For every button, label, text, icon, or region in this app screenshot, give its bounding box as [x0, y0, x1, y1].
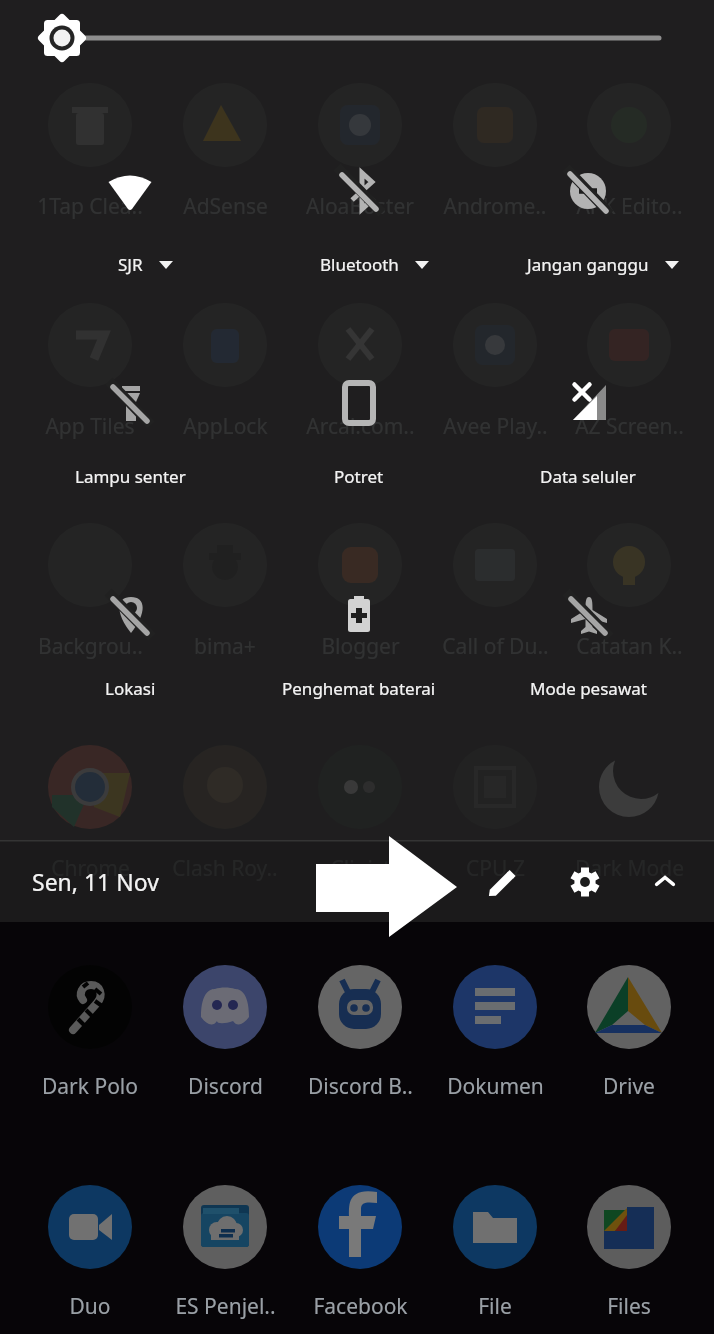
- staticText: Files: [607, 1292, 651, 1321]
- staticText: Cliqist: [330, 854, 391, 883]
- staticText: AloaBoster: [306, 192, 414, 221]
- button[interactable]: Lampu senter: [16, 337, 244, 506]
- button[interactable]: Clash Roy..: [145, 836, 305, 900]
- button[interactable]: Avee Play..: [415, 394, 575, 458]
- staticText: Lampu senter: [75, 465, 186, 488]
- staticText: Sen, 11 Nov: [32, 866, 159, 897]
- staticText: Potret: [334, 465, 384, 488]
- button[interactable]: APK Edito..: [549, 174, 709, 238]
- button[interactable]: Backgrou..: [10, 614, 170, 678]
- staticText: Dark Polo: [42, 1072, 138, 1101]
- button[interactable]: Dark Polo: [10, 1054, 170, 1118]
- button[interactable]: Collapse: [631, 848, 699, 916]
- staticText: Duo: [69, 1292, 111, 1321]
- staticText: Data seluler: [540, 465, 636, 488]
- staticText: App Tiles: [45, 412, 135, 441]
- button[interactable]: Bluetooth: [245, 125, 473, 294]
- button[interactable]: Data seluler: [474, 337, 702, 506]
- staticText: Facebook: [313, 1292, 408, 1321]
- button[interactable]: Discord: [145, 1054, 305, 1118]
- staticText: APK Edito..: [576, 192, 683, 221]
- button[interactable]: Files: [549, 1274, 709, 1334]
- staticText: File: [478, 1292, 512, 1321]
- staticText: Penghemat baterai: [282, 677, 436, 700]
- button[interactable]: Jangan ganggu: [474, 125, 702, 294]
- staticText: Discord B..: [308, 1072, 413, 1101]
- staticText: 1Tap Clea..: [37, 192, 143, 221]
- button[interactable]: AppLock: [145, 394, 305, 458]
- button[interactable]: Potret: [245, 337, 473, 506]
- staticText: Avee Play..: [443, 412, 548, 441]
- button[interactable]: Duo: [10, 1274, 170, 1334]
- button[interactable]: Drive: [549, 1054, 709, 1118]
- button[interactable]: Facebook: [280, 1274, 440, 1334]
- button[interactable]: App Tiles: [10, 394, 170, 458]
- staticText: Catatan K..: [576, 632, 683, 661]
- button[interactable]: AloaBoster: [280, 174, 440, 238]
- staticText: Mode pesawat: [530, 677, 647, 700]
- staticText: Jangan ganggu: [527, 253, 649, 276]
- staticText: Backgrou..: [38, 632, 143, 661]
- staticText: AppLock: [183, 412, 268, 441]
- staticText: AZ Screen..: [575, 412, 684, 441]
- button[interactable]: Blogger: [280, 614, 440, 678]
- button[interactable]: AZ Screen..: [549, 394, 709, 458]
- button[interactable]: Arcai.com..: [280, 394, 440, 458]
- button[interactable]: Lokasi: [16, 549, 244, 718]
- button[interactable]: AdSense: [145, 174, 305, 238]
- button[interactable]: Androme..: [415, 174, 575, 238]
- button[interactable]: Edit: [469, 848, 537, 916]
- staticText: Drive: [603, 1072, 655, 1101]
- button[interactable]: bima+: [145, 614, 305, 678]
- button[interactable]: Dokumen: [415, 1054, 575, 1118]
- staticText: Clash Roy..: [172, 854, 278, 883]
- button[interactable]: Dark Mode: [549, 836, 709, 900]
- staticText: CPU Z: [466, 854, 525, 883]
- button[interactable]: ES Penjel..: [145, 1274, 305, 1334]
- button[interactable]: Catatan K..: [549, 614, 709, 678]
- button[interactable]: Call of Du..: [415, 614, 575, 678]
- button[interactable]: SJR: [16, 125, 244, 294]
- button[interactable]: File: [415, 1274, 575, 1334]
- button[interactable]: 1Tap Clea..: [10, 174, 170, 238]
- staticText: AdSense: [183, 192, 268, 221]
- button[interactable]: Settings: [551, 848, 619, 916]
- staticText: SJR: [118, 253, 143, 276]
- staticText: Dark Mode: [575, 854, 684, 883]
- staticText: Bluetooth: [320, 253, 399, 276]
- button[interactable]: Mode pesawat: [474, 549, 702, 718]
- staticText: Arcai.com..: [306, 412, 415, 441]
- staticText: Blogger: [321, 632, 400, 661]
- button[interactable]: Chrome: [10, 836, 170, 900]
- staticText: Chrome: [51, 854, 130, 883]
- staticText: Call of Du..: [442, 632, 549, 661]
- button[interactable]: Penghemat baterai: [245, 549, 473, 718]
- button[interactable]: Discord B..: [280, 1054, 440, 1118]
- staticText: ES Penjel..: [175, 1292, 276, 1321]
- staticText: bima+: [194, 632, 256, 661]
- staticText: Lokasi: [105, 677, 156, 700]
- staticText: Androme..: [443, 192, 547, 221]
- button[interactable]: Cliqist: [280, 836, 440, 900]
- button[interactable]: CPU Z: [415, 836, 575, 900]
- staticText: Dokumen: [447, 1072, 544, 1101]
- staticText: Discord: [188, 1072, 263, 1101]
